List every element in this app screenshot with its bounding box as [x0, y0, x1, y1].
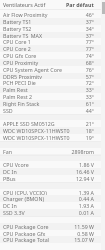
- staticText: 34°: [85, 25, 94, 32]
- staticText: WDC WD10SPCX-11HWST0: [3, 127, 70, 134]
- staticText: 19°: [85, 134, 94, 141]
- staticText: 0.44 A: [78, 195, 94, 202]
- staticText: 72°: [85, 79, 94, 86]
- staticText: 33°: [85, 86, 94, 93]
- staticText: 0.01 A: [78, 209, 94, 216]
- button[interactable]: CPU Package Gfx: [0, 230, 105, 237]
- button[interactable]: CPU Proximity: [0, 59, 105, 66]
- staticText: 33°: [85, 93, 94, 100]
- button[interactable]: CPU Package Total: [0, 236, 105, 243]
- button[interactable]: CPU System Agent Core: [0, 66, 105, 73]
- staticText: 77°: [85, 45, 94, 52]
- staticText: 15.07 W: [74, 236, 94, 243]
- button[interactable]: WDC WD10SPCX-11HWST0: [0, 127, 105, 134]
- staticText: 21°: [85, 120, 94, 127]
- button[interactable]: Fan: [0, 148, 105, 155]
- staticText: 2898rpm: [71, 148, 94, 155]
- staticText: 77°: [85, 38, 94, 45]
- staticText: 0.58 W: [77, 230, 94, 237]
- staticText: 68°: [85, 59, 94, 66]
- button[interactable]: SSD 3.3V: [0, 209, 105, 216]
- staticText: DC In: [3, 168, 17, 175]
- staticText: SSD 3.3V: [3, 209, 25, 216]
- staticText: DDR5 Proximity: [3, 73, 42, 80]
- staticText: CPU Package Gfx: [3, 230, 46, 237]
- button[interactable]: DC In: [0, 168, 105, 175]
- button[interactable]: CPU Gfx Core: [0, 52, 105, 59]
- button[interactable]: Palm Rest 2: [0, 93, 105, 100]
- button[interactable]: Battery TS_MAX: [0, 32, 105, 39]
- button[interactable]: DC In: [0, 202, 105, 209]
- button[interactable]: APPLE SSD SM0512G: [0, 120, 105, 127]
- staticText: 1.86 V: [78, 161, 94, 168]
- button[interactable]: CPU Vcore: [0, 161, 105, 168]
- staticText: 37°: [85, 18, 94, 25]
- staticText: 1.93 A: [78, 202, 94, 209]
- staticText: Battery TS1: [3, 18, 32, 25]
- staticText: 16.46 V: [75, 168, 94, 175]
- staticText: CPU Package Total: [3, 236, 49, 243]
- staticText: PBus: [3, 175, 16, 182]
- staticText: Par défaut: [66, 1, 94, 8]
- button[interactable]: PBus: [0, 175, 105, 182]
- staticText: WDC WD10SPCX-11HWST0: [3, 134, 70, 141]
- button[interactable]: CPU Core 2: [0, 45, 105, 52]
- staticText: Palm Rest: [3, 86, 28, 93]
- staticText: Battery TS2: [3, 25, 32, 32]
- staticText: 18°: [85, 127, 94, 134]
- staticText: 74°: [85, 52, 94, 59]
- staticText: 11.59 W: [74, 223, 94, 230]
- staticText: DC In: [3, 202, 17, 209]
- staticText: 1.39 A: [78, 189, 94, 196]
- staticText: CPU Gfx Core: [3, 52, 37, 59]
- staticText: Fan: [3, 148, 12, 155]
- staticText: 12.94 V: [75, 175, 94, 182]
- button[interactable]: [0, 216, 105, 223]
- staticText: CPU Proximity: [3, 59, 39, 66]
- staticText: 76°: [85, 66, 94, 73]
- staticText: Charger (BMON): [3, 195, 45, 202]
- staticText: CPU System Agent Core: [3, 66, 62, 73]
- staticText: Air Flow Proximity: [3, 11, 48, 18]
- button[interactable]: Air Flow Proximity: [0, 11, 105, 18]
- staticText: Ventilateurs Actif: [3, 1, 46, 8]
- button[interactable]: SSD: [0, 107, 105, 114]
- staticText: SSD: [3, 107, 13, 114]
- button[interactable]: [0, 114, 105, 121]
- staticText: Palm Rest 2: [3, 93, 33, 100]
- button[interactable]: DDR5 Proximity: [0, 73, 105, 80]
- staticText: CPU Vcore: [3, 161, 29, 168]
- staticText: 57°: [85, 73, 94, 80]
- button[interactable]: Battery TS2: [0, 25, 105, 32]
- staticText: 37°: [85, 32, 94, 39]
- button[interactable]: Ventilateurs Actif: [0, 0, 105, 9]
- button[interactable]: CPU (CPU, VCCIO): [0, 189, 105, 196]
- staticText: CPU (CPU, VCCIO): [3, 189, 47, 196]
- staticText: Right Fin Stack: [3, 100, 40, 107]
- button[interactable]: Battery TS1: [0, 18, 105, 25]
- staticText: CPU Core 2: [3, 45, 31, 52]
- button[interactable]: PCH PECI Die: [0, 79, 105, 86]
- staticText: PCH PECI Die: [3, 79, 36, 86]
- staticText: Battery TS_MAX: [3, 32, 42, 39]
- staticText: 61°: [85, 100, 94, 107]
- button[interactable]: Charger (BMON): [0, 195, 105, 202]
- button[interactable]: CPU Core 1: [0, 38, 105, 45]
- staticText: CPU Package Core: [3, 223, 49, 230]
- staticText: 44°: [85, 107, 94, 114]
- button[interactable]: WDC WD10SPCX-11HWST0: [0, 134, 105, 141]
- staticText: APPLE SSD SM0512G: [3, 120, 55, 127]
- button[interactable]: Right Fin Stack: [0, 100, 105, 107]
- button[interactable]: CPU Package Core: [0, 223, 105, 230]
- staticText: CPU Core 1: [3, 38, 31, 45]
- staticText: 46°: [85, 11, 94, 18]
- button[interactable]: Palm Rest: [0, 86, 105, 93]
